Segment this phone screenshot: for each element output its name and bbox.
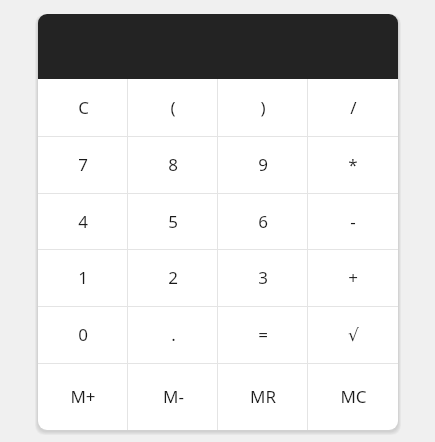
staticText: 5 bbox=[168, 210, 178, 233]
staticText: MC bbox=[340, 385, 367, 408]
staticText: 1 bbox=[78, 266, 88, 289]
button[interactable]: 3 bbox=[218, 249, 308, 306]
button[interactable]: / bbox=[308, 79, 398, 136]
button[interactable]: ) bbox=[218, 79, 308, 136]
button[interactable]: + bbox=[308, 249, 398, 306]
staticText: C bbox=[78, 96, 89, 119]
button[interactable]: 8 bbox=[128, 136, 218, 193]
staticText: + bbox=[348, 266, 358, 289]
staticText: . bbox=[171, 323, 176, 346]
staticText: - bbox=[350, 210, 356, 233]
button[interactable]: M- bbox=[128, 363, 218, 430]
staticText: 7 bbox=[78, 153, 88, 176]
button[interactable]: - bbox=[308, 193, 398, 249]
button[interactable]: MR bbox=[218, 363, 308, 430]
button[interactable]: M+ bbox=[38, 363, 128, 430]
button[interactable]: * bbox=[308, 136, 398, 193]
staticText: √ bbox=[348, 325, 359, 345]
staticText: 8 bbox=[168, 153, 178, 176]
staticText: M- bbox=[163, 385, 184, 408]
staticText: MR bbox=[250, 385, 276, 408]
button[interactable]: ( bbox=[128, 79, 218, 136]
staticText: = bbox=[258, 323, 268, 346]
staticText: 3 bbox=[258, 266, 268, 289]
button[interactable]: 1 bbox=[38, 249, 128, 306]
staticText: ) bbox=[260, 96, 266, 119]
button[interactable]: = bbox=[218, 306, 308, 363]
staticText: 4 bbox=[78, 210, 88, 233]
button[interactable] bbox=[38, 14, 398, 79]
button[interactable]: 2 bbox=[128, 249, 218, 306]
button[interactable]: 0 bbox=[38, 306, 128, 363]
button[interactable]: . bbox=[128, 306, 218, 363]
staticText: 6 bbox=[258, 210, 268, 233]
button[interactable]: MC bbox=[308, 363, 398, 430]
staticText: 0 bbox=[78, 323, 88, 346]
staticText: ( bbox=[170, 96, 176, 119]
button[interactable]: √ bbox=[308, 306, 398, 363]
button[interactable]: 5 bbox=[128, 193, 218, 249]
button[interactable]: C bbox=[38, 79, 128, 136]
button[interactable]: 6 bbox=[218, 193, 308, 249]
button[interactable]: 4 bbox=[38, 193, 128, 249]
button[interactable]: 7 bbox=[38, 136, 128, 193]
staticText: M+ bbox=[70, 385, 96, 408]
staticText: 9 bbox=[258, 153, 268, 176]
staticText: / bbox=[350, 96, 357, 119]
button[interactable]: 9 bbox=[218, 136, 308, 193]
staticText: * bbox=[348, 153, 358, 176]
staticText: 2 bbox=[168, 266, 178, 289]
